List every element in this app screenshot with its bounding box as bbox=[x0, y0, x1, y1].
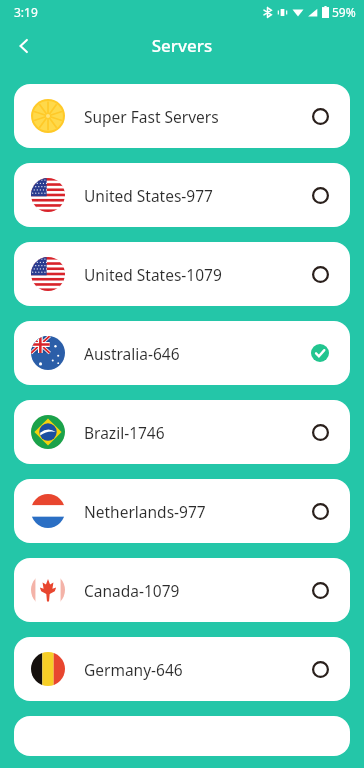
button[interactable]: Netherlands-977 bbox=[14, 479, 350, 543]
staticText: Servers bbox=[0, 34, 364, 57]
button[interactable]: Super Fast Servers bbox=[14, 84, 350, 148]
staticText: United States-1079 bbox=[84, 264, 222, 285]
staticText: Canada-1079 bbox=[84, 580, 180, 601]
button[interactable]: United States-1079 bbox=[14, 242, 350, 306]
staticText: Netherlands-977 bbox=[84, 501, 206, 522]
staticText: Germany-646 bbox=[84, 659, 183, 680]
staticText: 3:19 bbox=[14, 4, 38, 20]
staticText: Super Fast Servers bbox=[84, 106, 219, 127]
staticText: 59% bbox=[332, 4, 356, 20]
staticText: Australia-646 bbox=[84, 343, 180, 364]
button[interactable]: United States-977 bbox=[14, 163, 350, 227]
button[interactable] bbox=[14, 716, 350, 756]
button[interactable]: Brazil-1746 bbox=[14, 400, 350, 464]
button[interactable]: Canada-1079 bbox=[14, 558, 350, 622]
button[interactable]: Australia-646 bbox=[14, 321, 350, 385]
button[interactable]: Back bbox=[8, 30, 40, 62]
button[interactable]: Germany-646 bbox=[14, 637, 350, 701]
staticText: United States-977 bbox=[84, 185, 213, 206]
staticText: Brazil-1746 bbox=[84, 422, 165, 443]
